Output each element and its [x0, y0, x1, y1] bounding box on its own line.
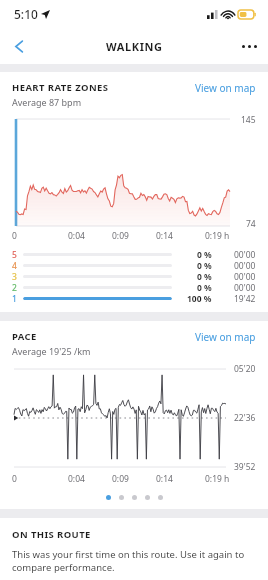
staticText: 00'00: [234, 282, 256, 293]
staticText: HEART RATE ZONES: [12, 81, 109, 94]
staticText: This was your first time on this route. …: [12, 548, 256, 574]
staticText: 5: [12, 249, 23, 260]
staticText: ON THIS ROUTE: [12, 528, 91, 541]
button[interactable]: View on map: [189, 81, 256, 95]
staticText: 74: [246, 218, 256, 230]
button[interactable]: [145, 495, 150, 500]
staticText: 00'00: [234, 249, 256, 260]
staticText: 100 %: [187, 293, 212, 304]
staticText: 0 %: [197, 282, 212, 293]
staticText: View on map: [195, 81, 256, 95]
staticText: 0:19 h: [205, 473, 230, 485]
staticText: 0 %: [197, 249, 212, 260]
staticText: 1: [12, 293, 23, 304]
staticText: 0:04: [68, 473, 85, 485]
button[interactable]: [132, 495, 137, 500]
staticText: 0:14: [156, 230, 173, 242]
staticText: 0:09: [112, 230, 129, 242]
staticText: 00'00: [234, 260, 256, 271]
staticText: 19'42: [234, 293, 256, 304]
staticText: Average 87 bpm: [12, 96, 82, 108]
staticText: 0:14: [156, 473, 173, 485]
button[interactable]: [119, 495, 124, 500]
staticText: 3: [12, 271, 23, 282]
staticText: 0:09: [112, 473, 129, 485]
staticText: 0:04: [68, 230, 85, 242]
button[interactable]: Back: [0, 28, 38, 64]
staticText: 39'52: [234, 461, 256, 473]
staticText: 0: [12, 473, 17, 485]
staticText: 0: [12, 230, 17, 242]
button[interactable]: [158, 495, 163, 500]
button[interactable]: View on map: [189, 330, 256, 344]
staticText: 00'00: [234, 271, 256, 282]
staticText: 05'20: [234, 363, 256, 375]
staticText: 5:10: [14, 6, 38, 22]
staticText: 22'36: [234, 412, 256, 424]
staticText: 2: [12, 282, 23, 293]
staticText: 0 %: [197, 271, 212, 282]
staticText: 0 %: [197, 260, 212, 271]
button[interactable]: [106, 495, 111, 500]
staticText: PACE: [12, 330, 37, 343]
staticText: Average 19'25 /km: [12, 345, 91, 357]
staticText: 0:19 h: [205, 230, 230, 242]
button[interactable]: More options: [230, 28, 268, 64]
staticText: WALKING: [106, 39, 163, 54]
staticText: 145: [241, 114, 256, 126]
staticText: 4: [12, 260, 23, 271]
staticText: View on map: [195, 330, 256, 344]
